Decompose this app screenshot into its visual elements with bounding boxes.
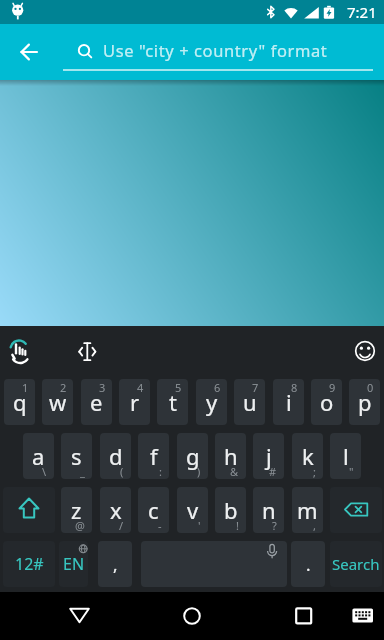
staticText: l (343, 441, 349, 471)
staticText: ; (313, 464, 316, 479)
button[interactable] (341, 592, 384, 632)
button[interactable]: h (215, 433, 246, 479)
staticText: c (148, 495, 159, 525)
staticText: s (71, 441, 82, 471)
staticText: _ (80, 464, 85, 479)
button[interactable]: n (253, 487, 284, 533)
staticText: ? (272, 518, 277, 533)
staticText: t (169, 387, 177, 417)
staticText: 3 (99, 380, 106, 395)
button[interactable] (4, 328, 44, 372)
staticText: b (224, 495, 238, 525)
staticText: @ (75, 518, 85, 533)
staticText: p (358, 387, 372, 417)
staticText: Use "city + country" format (103, 39, 328, 61)
button[interactable]: u (234, 379, 265, 425)
button[interactable]: g (177, 433, 208, 479)
button[interactable]: i (273, 379, 304, 425)
staticText: x (110, 495, 122, 525)
button[interactable]: o (311, 379, 342, 425)
staticText: - (158, 518, 162, 533)
staticText: z (71, 495, 82, 525)
staticText: " (349, 464, 354, 479)
staticText: \ (42, 464, 47, 479)
button[interactable] (56, 592, 103, 640)
button[interactable] (330, 487, 382, 533)
button[interactable]: b (215, 487, 246, 533)
staticText: # (269, 464, 277, 479)
button[interactable] (280, 592, 327, 640)
staticText: ) (197, 464, 201, 479)
staticText: k (302, 441, 314, 471)
staticText: 0 (367, 380, 374, 395)
staticText: 8 (291, 380, 298, 395)
staticText: 2 (60, 380, 67, 395)
button[interactable]: w (42, 379, 73, 425)
button[interactable] (12, 59, 46, 93)
button[interactable]: c (138, 487, 169, 533)
button[interactable]: f (138, 433, 169, 479)
staticText: 6 (214, 380, 221, 395)
staticText: 7:21 (347, 2, 377, 22)
button[interactable]: x (100, 487, 131, 533)
staticText: j (266, 441, 272, 471)
button[interactable] (141, 541, 287, 587)
button[interactable]: d (100, 433, 131, 479)
button[interactable]: z (61, 487, 92, 533)
staticText: i (286, 387, 292, 417)
button[interactable]: v (177, 487, 208, 533)
staticText: ! (236, 518, 239, 533)
staticText: ( (120, 464, 124, 479)
staticText: 12# (15, 553, 44, 575)
button[interactable] (3, 487, 55, 533)
staticText: d (109, 441, 123, 471)
button[interactable]: r (119, 379, 150, 425)
button[interactable]: e (81, 379, 112, 425)
button[interactable]: p (349, 379, 380, 425)
staticText: q (13, 387, 27, 417)
staticText: 9 (329, 380, 336, 395)
staticText: m (297, 495, 318, 525)
button[interactable] (68, 328, 108, 372)
button[interactable]: . (291, 541, 325, 587)
staticText: , (313, 518, 316, 533)
staticText: f (150, 441, 158, 471)
staticText: & (230, 464, 239, 479)
staticText: h (224, 441, 238, 471)
staticText: v (187, 495, 199, 525)
staticText: EN (63, 553, 85, 575)
button[interactable]: a (23, 433, 54, 479)
staticText: a (32, 441, 45, 471)
button[interactable]: q (4, 379, 35, 425)
staticText: o (320, 387, 334, 417)
staticText: 4 (137, 380, 144, 395)
button[interactable]: k (292, 433, 323, 479)
staticText: / (119, 518, 124, 533)
staticText: r (130, 387, 140, 417)
staticText: n (262, 495, 276, 525)
staticText: w (49, 387, 67, 417)
button[interactable]: s (61, 433, 92, 479)
button[interactable]: EN (59, 541, 88, 587)
button[interactable]: , (98, 541, 132, 587)
button[interactable]: m (292, 487, 323, 533)
staticText: e (90, 387, 103, 417)
staticText: : (159, 464, 162, 479)
staticText: 7 (252, 380, 259, 395)
staticText: Search (332, 554, 380, 574)
button[interactable]: y (196, 379, 227, 425)
button[interactable]: j (253, 433, 284, 479)
button[interactable] (168, 592, 216, 640)
staticText: . (306, 553, 311, 576)
button[interactable]: l (330, 433, 361, 479)
button[interactable]: t (157, 379, 188, 425)
staticText: , (113, 553, 118, 576)
staticText: u (243, 387, 257, 417)
staticText: 5 (175, 380, 182, 395)
button[interactable]: Use "city + country" format (63, 30, 373, 70)
staticText: ' (198, 518, 201, 533)
staticText: y (206, 387, 218, 417)
button[interactable]: 12# (3, 541, 55, 587)
button[interactable] (345, 328, 382, 372)
button[interactable]: Search (330, 541, 382, 587)
